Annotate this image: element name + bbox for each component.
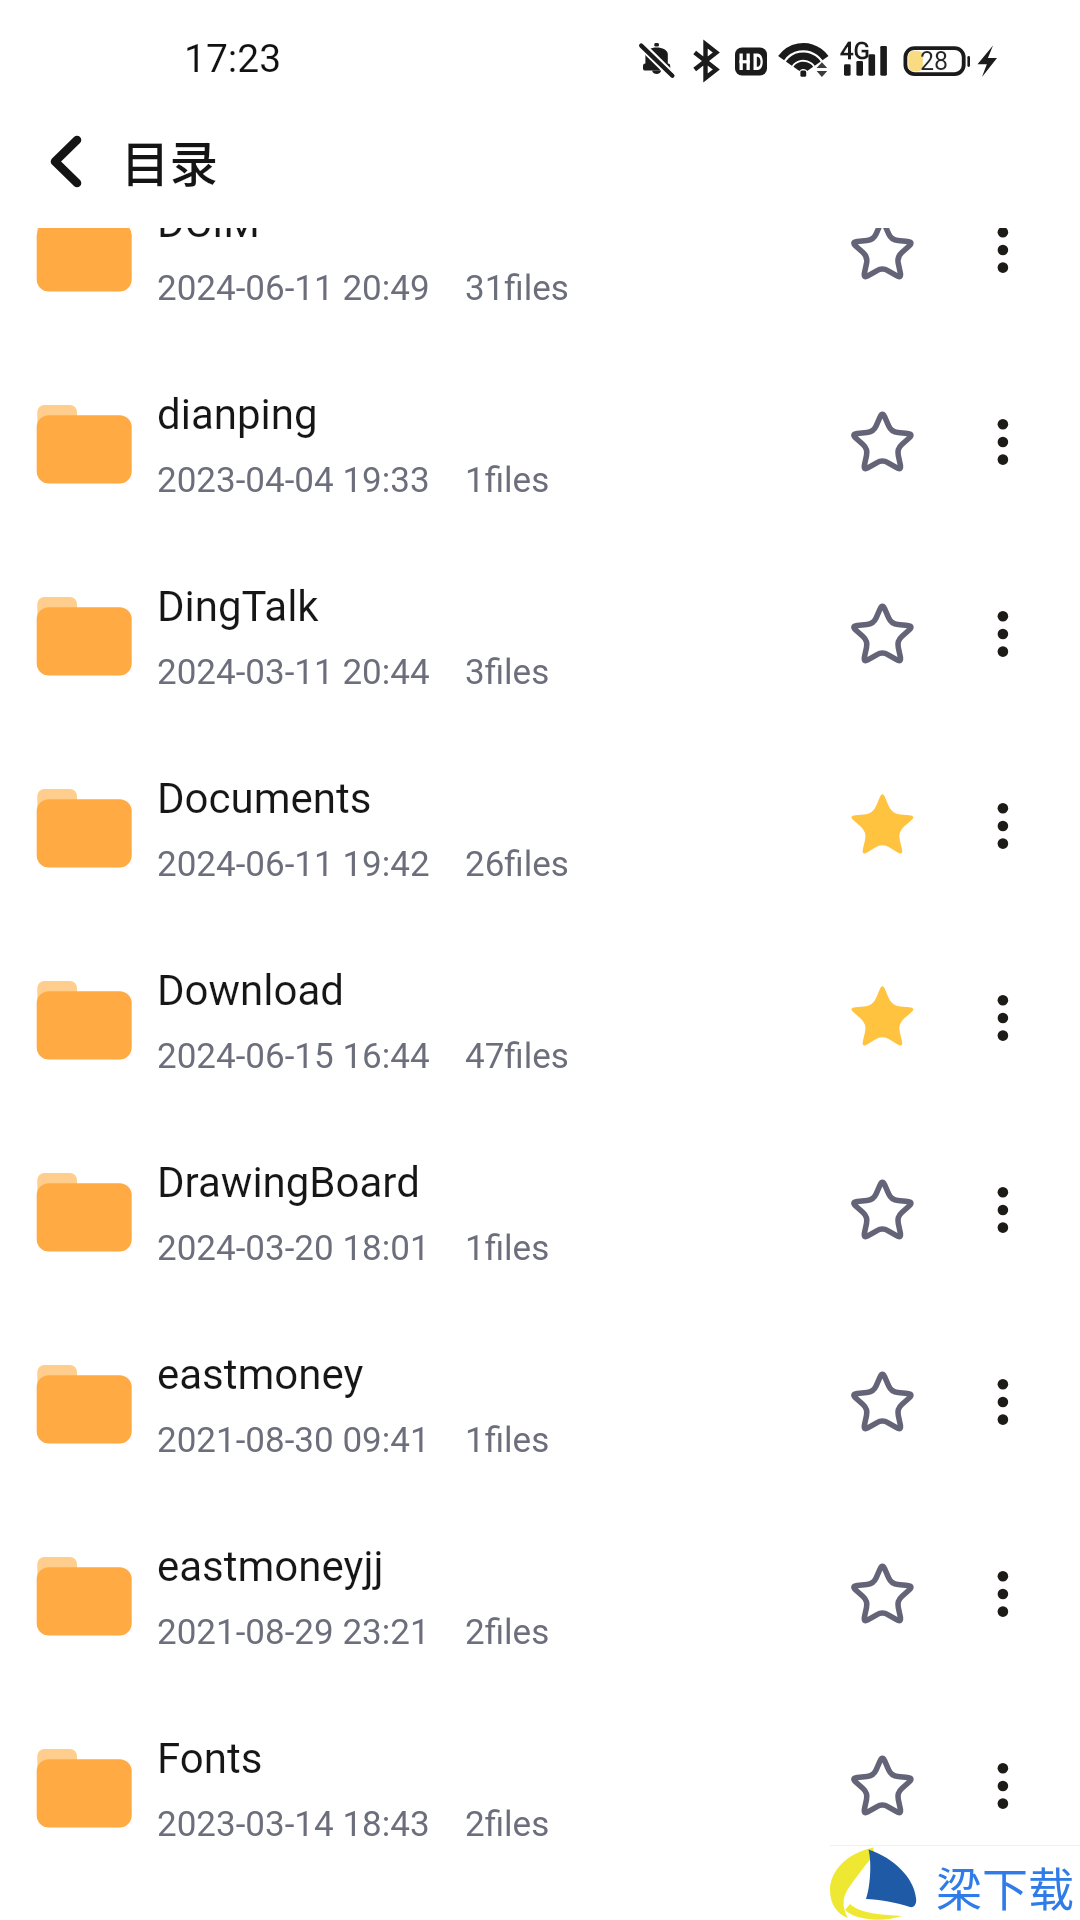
- button[interactable]: Add to favourites: [832, 586, 932, 686]
- button[interactable]: Add to favourites: [832, 394, 932, 494]
- staticText: eastmoney: [157, 1350, 364, 1399]
- staticText: 3files: [465, 652, 550, 693]
- staticText: 2files: [465, 1804, 550, 1845]
- button[interactable]: eastmoney: [0, 1317, 1080, 1509]
- staticText: eastmoneyjj: [157, 1542, 384, 1591]
- button[interactable]: Download: [0, 933, 1080, 1125]
- button[interactable]: Remove from favourites: [832, 970, 932, 1070]
- button[interactable]: More options: [962, 788, 1042, 868]
- button[interactable]: DrawingBoard: [0, 1125, 1080, 1317]
- staticText: 2024-03-20 18:01: [157, 1228, 430, 1269]
- button[interactable]: Fonts: [0, 1701, 1080, 1893]
- staticText: 梁下载: [936, 1853, 1074, 1920]
- staticText: 2024-06-11 19:42: [157, 844, 430, 885]
- button[interactable]: eastmoneyjj: [0, 1509, 1080, 1701]
- staticText: 1files: [465, 460, 550, 501]
- button[interactable]: More options: [962, 1172, 1042, 1252]
- button[interactable]: More options: [962, 596, 1042, 676]
- button[interactable]: More options: [962, 404, 1042, 484]
- staticText: 26files: [465, 844, 569, 885]
- staticText: 2024-06-15 16:44: [157, 1036, 430, 1077]
- button[interactable]: DingTalk: [0, 549, 1080, 741]
- button[interactable]: Add to favourites: [832, 1738, 932, 1838]
- staticText: 1files: [465, 1228, 550, 1269]
- staticText: 17:23: [184, 36, 282, 82]
- staticText: 2024-06-11 20:49: [157, 268, 430, 309]
- staticText: 2021-08-30 09:41: [157, 1420, 430, 1461]
- staticText: 47files: [465, 1036, 569, 1077]
- staticText: 目录: [121, 126, 219, 196]
- button[interactable]: Add to favourites: [832, 1354, 932, 1454]
- staticText: 4G: [840, 37, 870, 65]
- button[interactable]: Remove from favourites: [832, 778, 932, 878]
- staticText: DingTalk: [157, 582, 319, 631]
- staticText: 28: [920, 47, 949, 76]
- staticText: 2023-03-14 18:43: [157, 1804, 430, 1845]
- staticText: 2021-08-29 23:21: [157, 1612, 430, 1653]
- staticText: 31files: [465, 268, 569, 309]
- button[interactable]: More options: [962, 980, 1042, 1060]
- staticText: Fonts: [157, 1734, 263, 1783]
- button[interactable]: More options: [962, 228, 1042, 292]
- staticText: 2023-04-04 19:33: [157, 460, 430, 501]
- staticText: DCIM: [157, 228, 260, 247]
- staticText: 2files: [465, 1612, 550, 1653]
- staticText: DrawingBoard: [157, 1158, 420, 1207]
- button[interactable]: Add to favourites: [832, 1162, 932, 1262]
- staticText: dianping: [157, 390, 318, 439]
- button[interactable]: More options: [962, 1364, 1042, 1444]
- button[interactable]: Add to favourites: [832, 228, 932, 302]
- button[interactable]: More options: [962, 1748, 1042, 1828]
- button[interactable]: Back: [20, 112, 116, 192]
- staticText: 1files: [465, 1420, 550, 1461]
- button[interactable]: dianping: [0, 357, 1080, 549]
- button[interactable]: Documents: [0, 741, 1080, 933]
- staticText: Download: [157, 966, 344, 1015]
- button[interactable]: More options: [962, 1556, 1042, 1636]
- button[interactable]: DCIM: [0, 228, 1080, 357]
- staticText: 2024-03-11 20:44: [157, 652, 430, 693]
- button[interactable]: Add to favourites: [832, 1546, 932, 1646]
- staticText: Documents: [157, 774, 372, 823]
